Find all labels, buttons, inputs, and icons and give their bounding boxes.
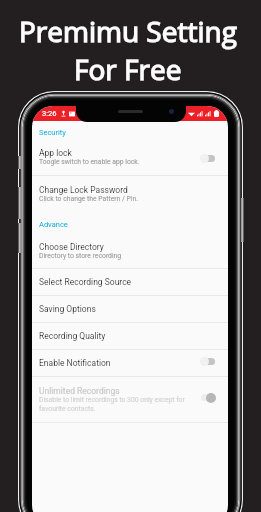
staticText: App lock [39,148,72,158]
staticText: Directory to store recording [39,252,122,260]
staticText: Disable to limit recordings to 300 only … [39,396,194,413]
staticText: For Free [74,50,182,88]
staticText: Premimu Setting [19,12,237,50]
button[interactable]: Toggle Enable Notification [200,356,215,367]
staticText: Change Lock Password [39,185,128,195]
button[interactable]: Toggle App lock [200,153,215,164]
staticText: 3:26 [42,109,57,118]
staticText: Toogle switch to enable app lock. [39,158,140,166]
button[interactable]: Choose Directory [32,237,228,268]
button[interactable]: Change Lock Password [32,176,228,212]
button[interactable]: App lock [32,143,228,175]
button[interactable]: Unlimited Recordings [32,377,228,422]
staticText: Saving Options [39,304,96,314]
staticText: Click to change the Pattern / Pin. [39,195,138,203]
staticText: Unlimited Recordings [39,386,120,396]
button[interactable]: Toggle Unlimited Recordings [200,392,215,403]
staticText: Select Recording Source [39,277,132,287]
button[interactable]: Enable Notification [32,350,228,376]
staticText: Choose Directory [39,242,104,252]
staticText: Recording Quality [39,331,106,341]
button[interactable]: Saving Options [32,296,228,322]
staticText: Enable Notification [39,358,111,368]
staticText: Advance [39,220,68,229]
staticText: Security [39,128,66,137]
button[interactable]: Recording Quality [32,323,228,349]
button[interactable]: Select Recording Source [32,269,228,295]
